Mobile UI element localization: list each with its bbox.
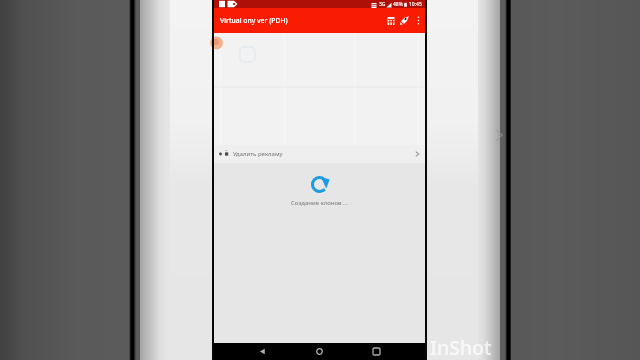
button[interactable]: Boost bbox=[398, 14, 411, 27]
staticText: 10:45 bbox=[409, 1, 422, 8]
button[interactable]: Recents bbox=[368, 343, 385, 360]
button[interactable]: Back bbox=[254, 343, 271, 360]
button[interactable]: Grid view bbox=[384, 14, 397, 27]
button[interactable]: More options bbox=[412, 14, 425, 27]
button[interactable]: Add clone bbox=[240, 47, 255, 62]
button[interactable]: Home bbox=[311, 343, 328, 360]
staticText: 3G bbox=[379, 1, 386, 8]
staticText: Virtual ony ver (PDH) bbox=[220, 16, 288, 25]
staticText: 48% bbox=[393, 1, 403, 8]
staticText: Удалить рекламу bbox=[233, 150, 283, 158]
button[interactable]: Удалить рекламу bbox=[214, 145, 425, 163]
staticText: Создание клонов ... bbox=[291, 199, 348, 207]
staticText: InShot bbox=[430, 334, 492, 360]
